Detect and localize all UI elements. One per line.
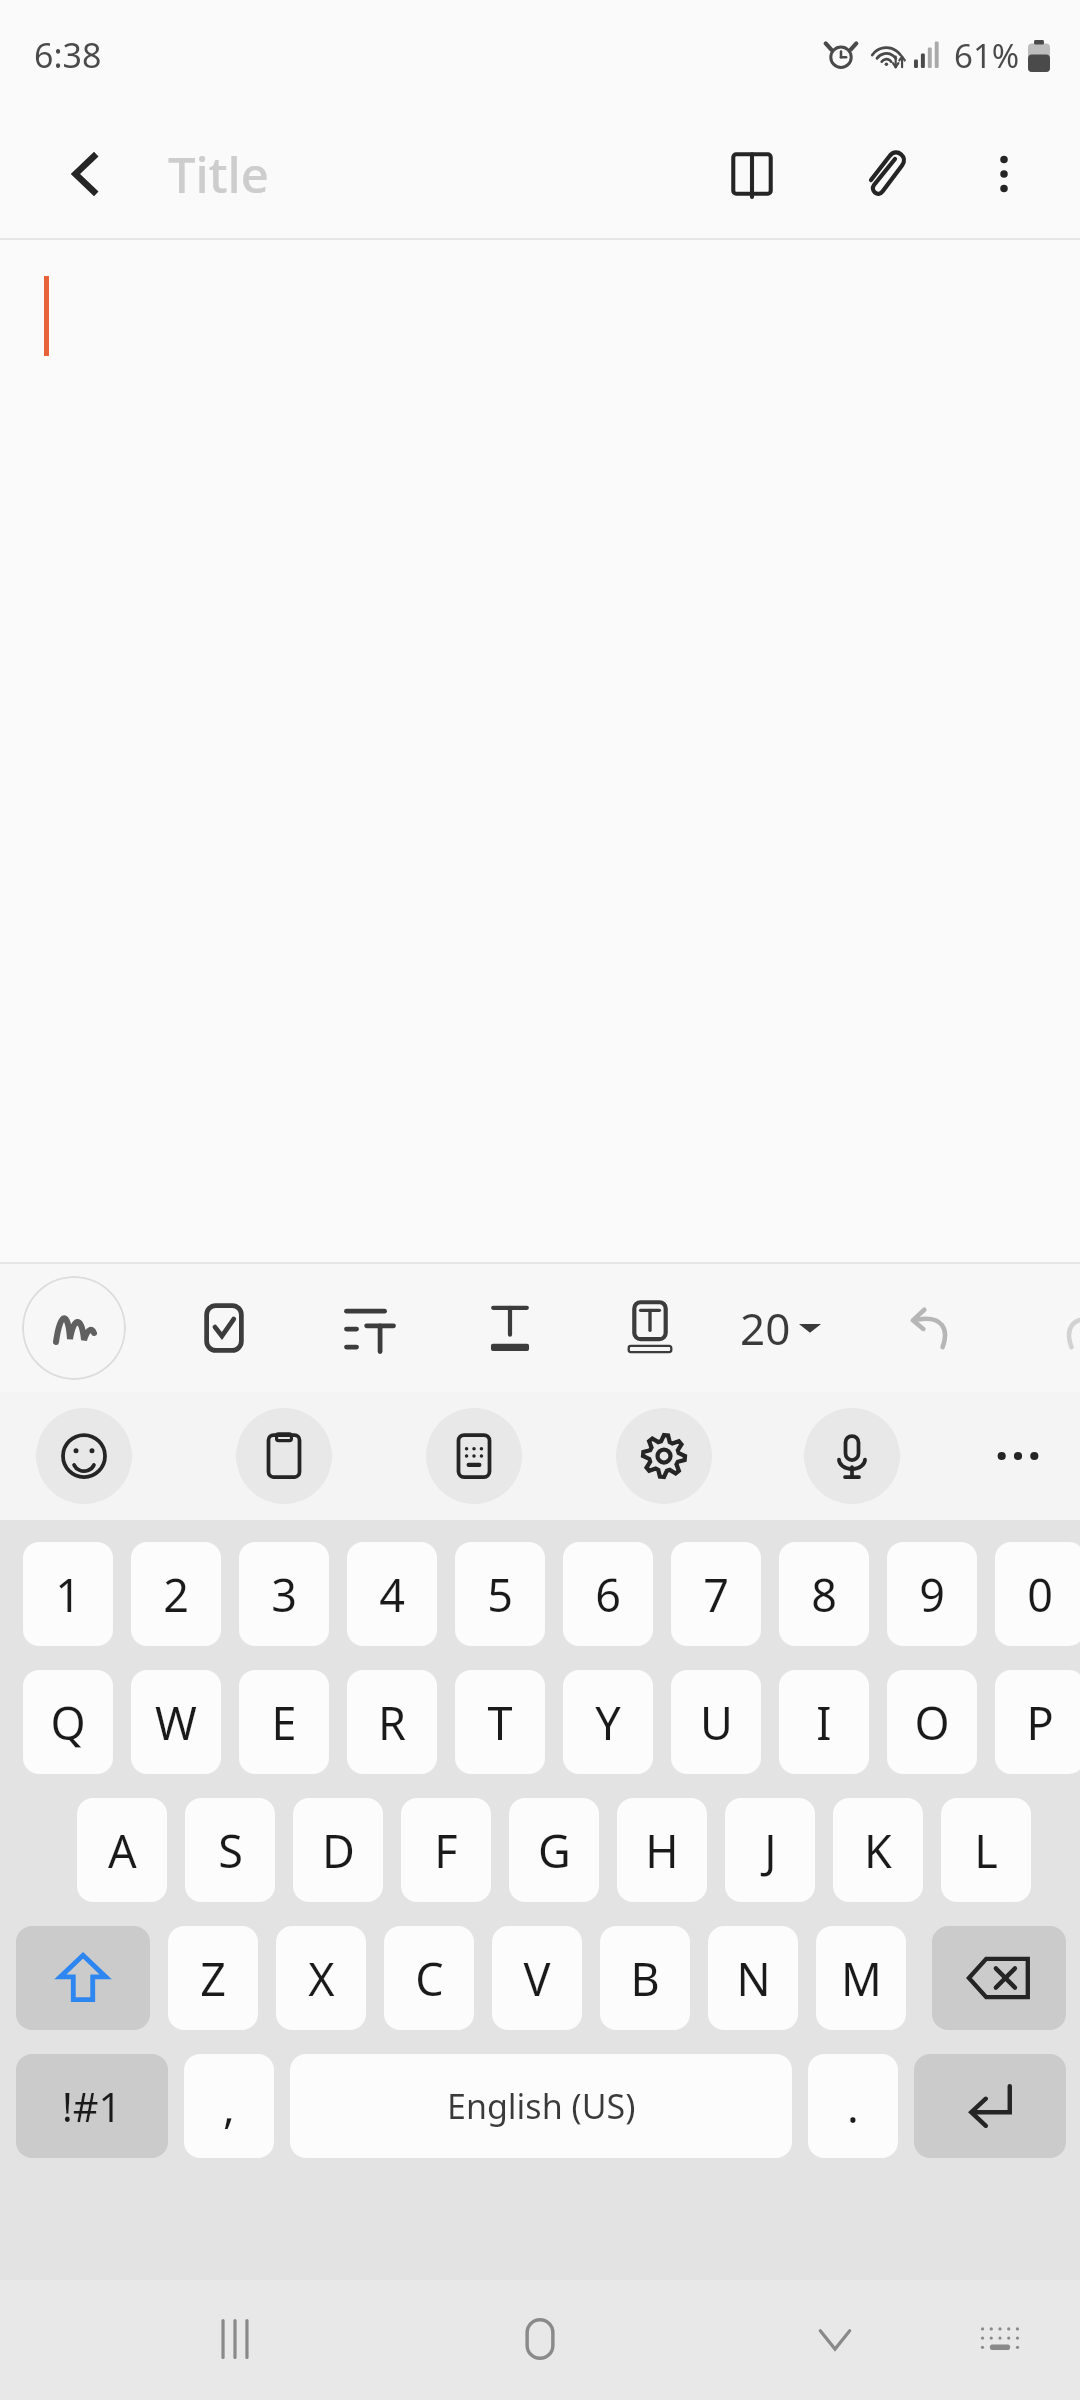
button[interactable]: Shift <box>16 1926 150 2030</box>
staticText: P <box>1026 1692 1054 1753</box>
button[interactable]: Handwriting <box>22 1276 126 1380</box>
staticText: Y <box>595 1692 621 1753</box>
button[interactable]: 0 <box>995 1542 1080 1646</box>
button[interactable]: S <box>185 1798 275 1902</box>
button[interactable]: H <box>617 1798 707 1902</box>
button[interactable]: Redo <box>1040 1286 1080 1370</box>
button[interactable]: 2 <box>131 1542 221 1646</box>
button[interactable]: I <box>779 1670 869 1774</box>
button[interactable]: Paragraph style <box>328 1286 412 1370</box>
button[interactable]: . <box>808 2054 898 2158</box>
button[interactable]: Y <box>563 1670 653 1774</box>
button[interactable]: Reading mode <box>710 132 794 216</box>
button[interactable]: 3 <box>239 1542 329 1646</box>
button[interactable]: English (US) <box>290 2054 792 2158</box>
button[interactable]: 7 <box>671 1542 761 1646</box>
button[interactable]: Home <box>495 2294 585 2384</box>
button[interactable]: Text background <box>608 1286 692 1370</box>
button[interactable]: F <box>401 1798 491 1902</box>
button[interactable]: Keyboard layout <box>955 2294 1045 2384</box>
button[interactable]: U <box>671 1670 761 1774</box>
button[interactable]: P <box>995 1670 1080 1774</box>
button[interactable]: Keyboard modes <box>426 1408 522 1504</box>
button[interactable]: W <box>131 1670 221 1774</box>
staticText: 6 <box>595 1564 621 1625</box>
button[interactable]: Settings <box>616 1408 712 1504</box>
button[interactable]: X <box>276 1926 366 2030</box>
button[interactable]: 1 <box>23 1542 113 1646</box>
button[interactable]: Attach <box>842 132 926 216</box>
staticText: C <box>415 1948 444 2009</box>
staticText: W <box>155 1692 197 1753</box>
button[interactable]: 5 <box>455 1542 545 1646</box>
staticText: K <box>864 1820 892 1881</box>
button[interactable]: Q <box>23 1670 113 1774</box>
button[interactable]: E <box>239 1670 329 1774</box>
button[interactable]: Enter <box>914 2054 1066 2158</box>
button[interactable]: A <box>77 1798 167 1902</box>
button[interactable]: L <box>941 1798 1031 1902</box>
button[interactable]: Back <box>50 138 122 210</box>
button[interactable]: 6 <box>563 1542 653 1646</box>
button[interactable]: More <box>970 1408 1066 1504</box>
staticText: G <box>538 1820 571 1881</box>
staticText: M <box>841 1948 882 2009</box>
staticText: T <box>487 1692 513 1753</box>
button[interactable]: 9 <box>887 1542 977 1646</box>
button[interactable]: G <box>509 1798 599 1902</box>
staticText: A <box>108 1820 137 1881</box>
staticText: 1 <box>55 1564 81 1625</box>
staticText: 0 <box>1027 1564 1053 1625</box>
button[interactable]: Undo <box>890 1286 974 1370</box>
button[interactable]: Hide keyboard <box>790 2294 880 2384</box>
button[interactable]: Emoji <box>36 1408 132 1504</box>
staticText: 61% <box>954 33 1020 78</box>
button[interactable]: Voice input <box>804 1408 900 1504</box>
button[interactable]: O <box>887 1670 977 1774</box>
staticText: 2 <box>163 1564 189 1625</box>
staticText: L <box>974 1820 998 1881</box>
staticText: R <box>378 1692 406 1753</box>
staticText: D <box>322 1820 355 1881</box>
button[interactable]: K <box>833 1798 923 1902</box>
staticText: Title <box>168 141 269 208</box>
staticText: 5 <box>487 1564 513 1625</box>
staticText: B <box>630 1948 660 2009</box>
button[interactable]: , <box>184 2054 274 2158</box>
staticText: X <box>308 1948 335 2009</box>
button[interactable]: More options <box>966 136 1042 212</box>
button[interactable]: Backspace <box>932 1926 1066 2030</box>
button[interactable]: B <box>600 1926 690 2030</box>
button[interactable]: 20 <box>732 1286 829 1370</box>
button[interactable]: Text style <box>468 1286 552 1370</box>
button[interactable]: C <box>384 1926 474 2030</box>
staticText: 8 <box>811 1564 837 1625</box>
button[interactable]: 8 <box>779 1542 869 1646</box>
staticText: 3 <box>271 1564 297 1625</box>
staticText: S <box>218 1820 243 1881</box>
button[interactable]: T <box>455 1670 545 1774</box>
staticText: English (US) <box>447 2083 636 2129</box>
button[interactable]: V <box>492 1926 582 2030</box>
button[interactable]: 4 <box>347 1542 437 1646</box>
staticText: , <box>223 2076 235 2136</box>
button[interactable]: J <box>725 1798 815 1902</box>
staticText: E <box>271 1692 297 1753</box>
button[interactable]: Recent apps <box>190 2294 280 2384</box>
button[interactable]: Z <box>168 1926 258 2030</box>
button[interactable]: M <box>816 1926 906 2030</box>
button[interactable]: R <box>347 1670 437 1774</box>
staticText: 9 <box>919 1564 945 1625</box>
staticText: U <box>700 1692 733 1753</box>
button[interactable]: Checklist <box>182 1286 266 1370</box>
button[interactable]: D <box>293 1798 383 1902</box>
staticText: V <box>523 1948 551 2009</box>
button[interactable]: Clipboard <box>236 1408 332 1504</box>
button[interactable]: N <box>708 1926 798 2030</box>
staticText: O <box>914 1692 950 1753</box>
button[interactable]: !#1 <box>16 2054 168 2158</box>
staticText: 7 <box>703 1564 729 1625</box>
staticText: I <box>816 1692 832 1753</box>
staticText: . <box>847 2076 859 2136</box>
staticText: 6:38 <box>34 32 102 78</box>
